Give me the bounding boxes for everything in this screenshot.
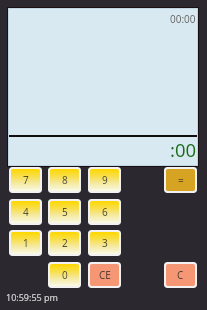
staticText: 00:00 [170,12,196,26]
button[interactable]: 4 [11,201,40,223]
staticText: 1 [23,236,29,250]
staticText: 2 [62,236,68,250]
button[interactable]: CE [90,264,119,286]
button[interactable]: 8 [50,169,79,191]
other: Time display [9,9,197,165]
staticText: C [177,268,184,282]
staticText: 7 [23,173,29,187]
button[interactable]: C [166,264,195,286]
staticText: 0 [62,268,68,282]
button[interactable]: = [166,169,195,191]
staticText: 4 [23,205,29,219]
button[interactable]: 5 [50,201,79,223]
staticText: 5 [62,205,68,219]
button[interactable]: 6 [90,201,119,223]
staticText: 3 [102,236,108,250]
staticText: CE [99,268,111,282]
button[interactable]: 0 [50,264,79,286]
staticText: :00 [170,137,197,162]
button[interactable]: 3 [90,232,119,254]
button[interactable]: 2 [50,232,79,254]
button[interactable]: 9 [90,169,119,191]
staticText: 10:59:55 pm [6,291,59,303]
button[interactable]: 7 [11,169,40,191]
button[interactable]: 1 [11,232,40,254]
staticText: 6 [102,205,108,219]
staticText: = [178,173,184,187]
staticText: 8 [62,173,68,187]
staticText: 9 [102,173,108,187]
